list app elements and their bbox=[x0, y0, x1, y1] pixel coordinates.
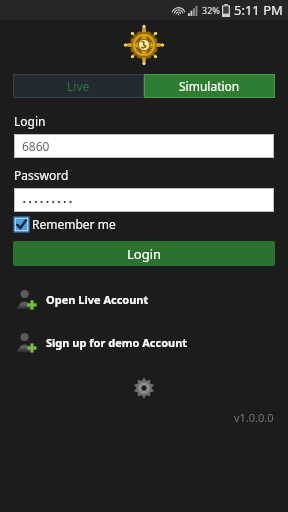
staticText: 5:11 PM bbox=[234, 1, 283, 19]
button[interactable] bbox=[14, 188, 274, 212]
button[interactable]: Open Live Account bbox=[14, 287, 274, 311]
staticText: Remember me bbox=[32, 216, 116, 232]
button[interactable]: Sign up for demo Account bbox=[14, 330, 274, 354]
staticText: 32% bbox=[202, 4, 220, 16]
staticText: Login bbox=[127, 245, 162, 263]
button[interactable]: Remember me bbox=[14, 216, 116, 232]
staticText: v1.0.0.0 bbox=[234, 410, 274, 425]
staticText: Live bbox=[67, 78, 90, 94]
button[interactable]: Live bbox=[13, 74, 144, 98]
button[interactable]: 6860 bbox=[14, 134, 274, 158]
button[interactable]: Login bbox=[13, 241, 275, 266]
staticText: Login bbox=[14, 113, 46, 129]
staticText: Sign up for demo Account bbox=[46, 335, 188, 350]
button[interactable]: Settings bbox=[128, 372, 160, 404]
staticText: Password bbox=[14, 167, 69, 183]
staticText: Simulation bbox=[179, 78, 240, 94]
staticText: 6860 bbox=[22, 138, 50, 154]
staticText: Open Live Account bbox=[46, 292, 149, 307]
button[interactable]: Simulation bbox=[144, 74, 275, 98]
